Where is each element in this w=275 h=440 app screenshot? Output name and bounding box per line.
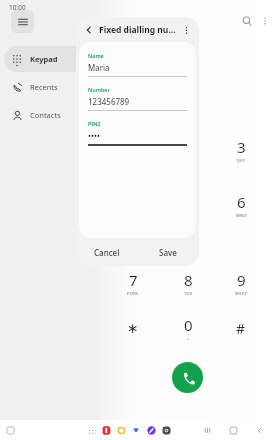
staticText: PQRS xyxy=(127,291,139,296)
staticText: 7 xyxy=(129,270,138,290)
staticText: WXYZ xyxy=(235,291,248,296)
staticText: 6 xyxy=(237,192,246,212)
staticText: Recents xyxy=(30,82,58,92)
staticText: Cancel xyxy=(94,247,120,258)
button[interactable]: Contacts xyxy=(4,102,96,128)
staticText: 2 xyxy=(184,137,193,157)
staticText: PIN2 xyxy=(88,120,101,127)
staticText: Maria xyxy=(88,62,110,73)
staticText: DEF xyxy=(237,158,246,163)
button[interactable]: Call xyxy=(172,362,203,393)
button[interactable]: Home xyxy=(225,422,241,438)
button[interactable]: More options xyxy=(256,12,274,30)
button[interactable] xyxy=(115,424,127,436)
button[interactable]: 1 xyxy=(108,132,158,168)
button[interactable] xyxy=(130,424,142,436)
button[interactable]: Open navigation menu xyxy=(11,10,34,33)
button[interactable]: 8 xyxy=(163,265,213,301)
button[interactable]: ∗ xyxy=(108,310,158,346)
button[interactable]: More options xyxy=(179,23,193,37)
staticText: 123456789 xyxy=(88,96,130,107)
staticText: Contacts xyxy=(30,110,61,120)
staticText: 10:00 xyxy=(9,3,26,12)
staticText: TUV xyxy=(184,291,193,296)
staticText: + xyxy=(187,336,190,341)
staticText: Number xyxy=(88,86,110,93)
button[interactable]: Cancel xyxy=(76,238,137,266)
staticText: 1 xyxy=(129,140,138,160)
button[interactable] xyxy=(145,424,157,436)
button[interactable]: 7 xyxy=(108,265,158,301)
staticText: 3 xyxy=(237,137,246,157)
staticText: Name xyxy=(88,52,104,59)
staticText: Fixed dialling nu... xyxy=(99,24,176,36)
staticText: 8 xyxy=(184,270,193,290)
button[interactable]: Save xyxy=(137,238,199,266)
button[interactable]: Keypad xyxy=(4,46,96,72)
button[interactable]: 0 xyxy=(163,310,213,346)
button[interactable]: Search xyxy=(238,12,256,30)
button[interactable]: Back xyxy=(251,422,267,438)
button[interactable]: # xyxy=(216,310,266,346)
staticText: ∗ xyxy=(127,320,139,336)
staticText: 9 xyxy=(237,270,246,290)
staticText: Save xyxy=(159,247,177,258)
button[interactable] xyxy=(100,424,112,436)
staticText: # xyxy=(236,319,246,338)
button[interactable]: Recent app xyxy=(5,425,15,435)
button[interactable]: Recents xyxy=(4,74,96,100)
staticText: MNO xyxy=(236,213,247,218)
staticText: Keypad xyxy=(30,54,58,64)
button[interactable]: Back xyxy=(82,23,96,37)
staticText: 0 xyxy=(184,315,193,335)
button[interactable]: 6 xyxy=(216,187,266,223)
button[interactable]: 3 xyxy=(216,132,266,168)
button[interactable] xyxy=(160,424,172,436)
button[interactable]: 2 xyxy=(163,132,213,168)
button[interactable]: All apps xyxy=(86,424,98,436)
staticText: •••• xyxy=(88,130,101,141)
button[interactable]: 9 xyxy=(216,265,266,301)
button[interactable]: Recents xyxy=(199,422,215,438)
